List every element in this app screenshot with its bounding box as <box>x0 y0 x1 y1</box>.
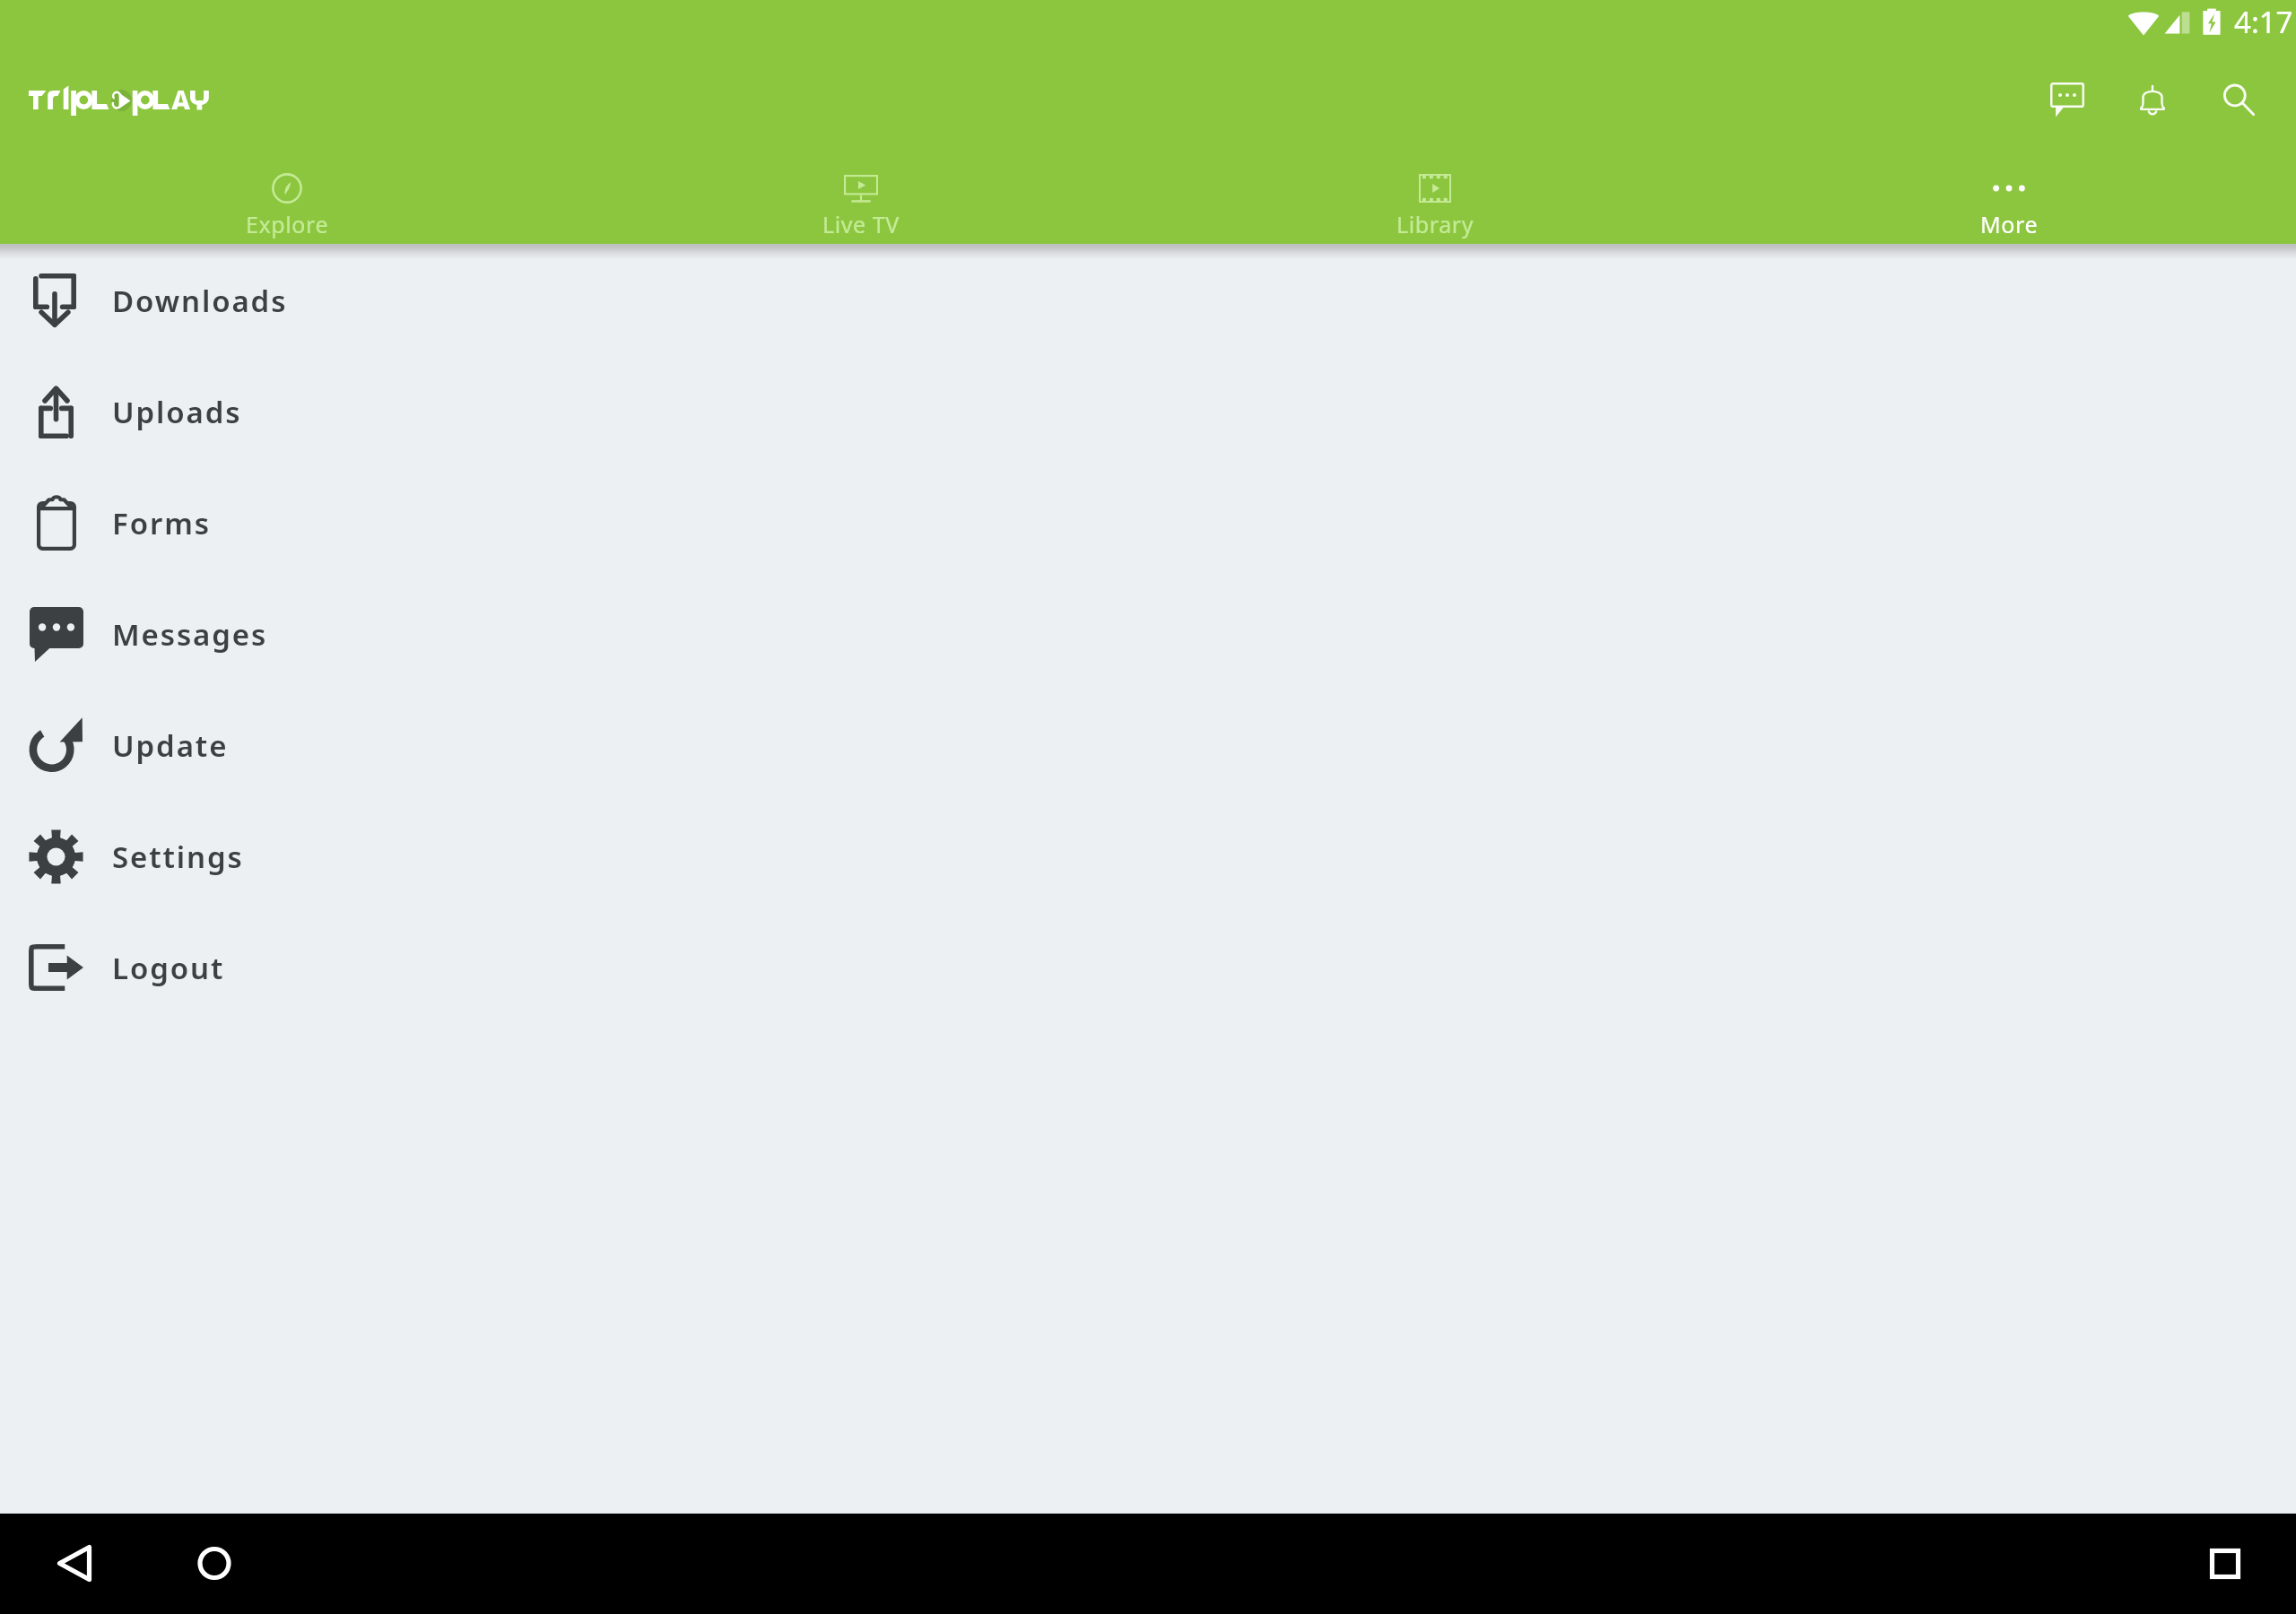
button[interactable]: Home <box>182 1532 247 1596</box>
button[interactable]: Downloads <box>0 245 2296 356</box>
button[interactable]: Recent apps <box>2192 1532 2257 1596</box>
button[interactable]: More <box>1722 152 2296 244</box>
button[interactable]: Library <box>1148 152 1722 244</box>
staticText: More <box>1980 209 2039 239</box>
button[interactable]: Notifications <box>2113 60 2192 139</box>
button[interactable]: Live TV <box>574 152 1148 244</box>
button[interactable]: Settings <box>0 801 2296 912</box>
staticText: Downloads <box>112 281 288 321</box>
staticText: Live TV <box>822 209 900 239</box>
staticText: Update <box>112 725 229 766</box>
staticText: Forms <box>112 503 211 543</box>
button[interactable]: Uploads <box>0 356 2296 467</box>
staticText: 4:17 <box>2234 2 2293 42</box>
staticText: Settings <box>112 837 244 877</box>
button[interactable]: Forms <box>0 467 2296 578</box>
button[interactable]: Search <box>2199 60 2278 139</box>
staticText: Explore <box>246 209 329 239</box>
button[interactable]: Logout <box>0 912 2296 1023</box>
staticText: Library <box>1396 209 1474 239</box>
button[interactable]: Messages <box>2028 60 2107 139</box>
staticText: Logout <box>112 948 225 988</box>
staticText: Messages <box>112 614 268 655</box>
staticText: Uploads <box>112 392 242 432</box>
button[interactable]: Back <box>58 1532 123 1596</box>
button[interactable]: Messages <box>0 578 2296 690</box>
button[interactable]: Update <box>0 690 2296 801</box>
button[interactable]: Explore <box>0 152 574 244</box>
